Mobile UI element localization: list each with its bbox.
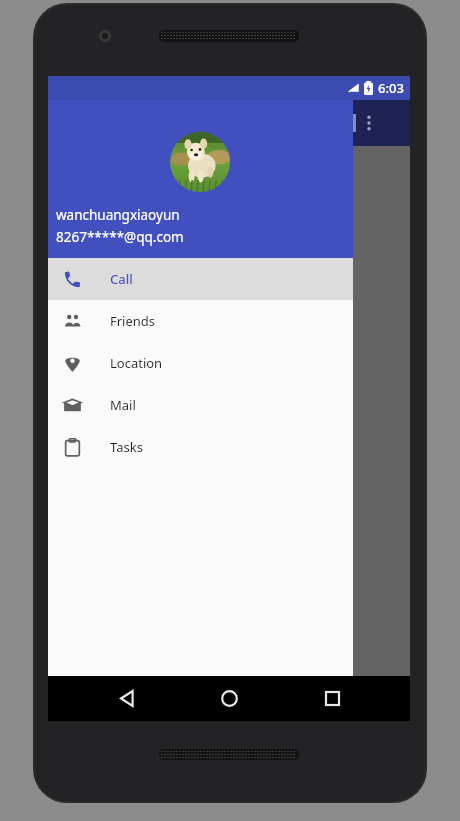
staticText: 8267*****@qq.com [56,228,184,246]
button[interactable]: Back [103,676,151,721]
button[interactable]: More options [351,105,387,141]
button[interactable]: Call [48,258,353,300]
staticText: Call [110,270,133,288]
staticText: Location [110,354,163,372]
button[interactable]: Home [205,676,253,721]
staticText: Friends [110,312,156,330]
button[interactable]: wanchuangxiaoyun [48,100,353,258]
button[interactable]: Tasks [48,426,353,468]
staticText: Mail [110,396,136,414]
button[interactable]: Friends [48,300,353,342]
button[interactable]: Recents [308,676,356,721]
staticText: 6:03 [378,79,404,97]
button[interactable]: Location [48,342,353,384]
staticText: Tasks [110,438,143,456]
staticText: wanchuangxiaoyun [56,206,180,224]
button[interactable]: Mail [48,384,353,426]
